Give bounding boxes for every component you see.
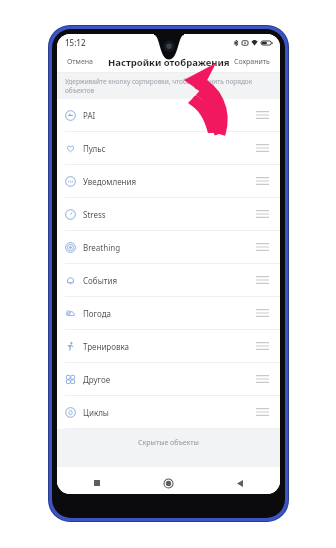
button[interactable]: Переместить Breathing xyxy=(253,240,272,254)
staticText: Уведомления xyxy=(83,176,137,187)
button[interactable]: Переместить Тренировка xyxy=(253,339,272,353)
button[interactable]: Stress xyxy=(57,198,280,231)
button[interactable]: Сохранить xyxy=(229,54,275,70)
staticText: 15:12 xyxy=(65,37,86,48)
button[interactable]: Переместить Stress xyxy=(253,207,272,221)
button[interactable]: Переместить Пульс xyxy=(253,141,272,155)
button[interactable]: Тренировка xyxy=(57,330,280,363)
button[interactable]: Назад xyxy=(232,475,248,492)
button[interactable]: Breathing xyxy=(57,231,280,264)
staticText: Циклы xyxy=(83,407,109,418)
staticText: Тренировка xyxy=(83,341,130,352)
staticText: Другое xyxy=(83,374,111,385)
button[interactable]: Переместить PAI xyxy=(253,108,272,122)
button[interactable]: Главный экран xyxy=(160,475,177,492)
button[interactable]: Погода xyxy=(57,297,280,330)
staticText: PAI xyxy=(83,110,96,121)
button[interactable]: Циклы xyxy=(57,396,280,429)
button[interactable]: Пульс xyxy=(57,132,280,165)
staticText: Stress xyxy=(83,209,106,220)
button[interactable]: Переместить Циклы xyxy=(253,405,272,419)
staticText: Погода xyxy=(83,308,112,319)
button[interactable]: Переместить События xyxy=(253,273,272,287)
button[interactable]: PAI xyxy=(57,99,280,132)
button[interactable]: Переместить Уведомления xyxy=(253,174,272,188)
button[interactable]: Отмена xyxy=(62,54,99,70)
staticText: Breathing xyxy=(83,242,121,253)
staticText: События xyxy=(83,275,118,286)
staticText: Скрытые объекты xyxy=(138,438,199,448)
button[interactable]: События xyxy=(57,264,280,297)
staticText: Отмена xyxy=(67,57,94,67)
button[interactable]: Переместить Погода xyxy=(253,306,272,320)
button[interactable]: Уведомления xyxy=(57,165,280,198)
button[interactable]: Другое xyxy=(57,363,280,396)
staticText: Удерживайте кнопку сортировки, чтобы изм… xyxy=(65,77,253,95)
staticText: Сохранить xyxy=(234,57,270,67)
button[interactable]: Обзор xyxy=(89,475,105,491)
button[interactable]: Переместить Другое xyxy=(253,372,272,386)
staticText: Пульс xyxy=(83,143,106,154)
staticText: Настройки отображения xyxy=(108,56,230,69)
